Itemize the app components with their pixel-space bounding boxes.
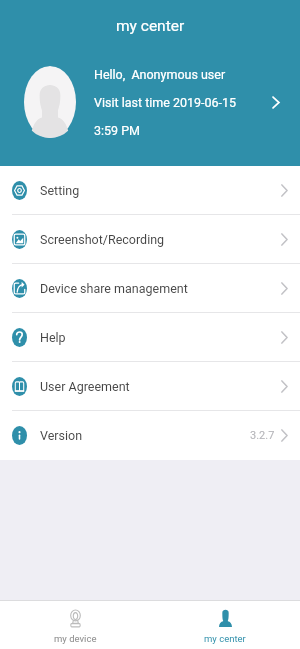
staticText: 3:59 PM (94, 123, 141, 138)
button[interactable]: my device (0, 601, 150, 649)
other: my center (219, 610, 232, 627)
staticText: my center (204, 633, 246, 644)
button[interactable]: Help (0, 313, 300, 362)
staticText: Device share management (40, 281, 188, 296)
staticText: Version (40, 428, 83, 443)
staticText: User Agreement (40, 379, 130, 394)
button[interactable]: Screenshot/Recording (0, 215, 300, 264)
other: my device (69, 610, 82, 627)
staticText: Setting (40, 183, 80, 198)
staticText: Visit last time 2019-06-15 (94, 95, 237, 110)
button[interactable]: Device share management (0, 264, 300, 313)
staticText: my device (54, 633, 97, 644)
button[interactable]: User Agreement (0, 362, 300, 411)
button[interactable]: Hello, Anonymous user (0, 52, 300, 152)
staticText: 3.2.7 (250, 429, 275, 442)
staticText: Help (40, 330, 66, 345)
button[interactable]: Version (0, 411, 300, 460)
button[interactable]: Setting (0, 166, 300, 215)
button[interactable]: my center (150, 601, 300, 649)
staticText: Hello, Anonymous user (94, 67, 226, 82)
staticText: Screenshot/Recording (40, 232, 165, 247)
staticText: my center (116, 17, 185, 35)
